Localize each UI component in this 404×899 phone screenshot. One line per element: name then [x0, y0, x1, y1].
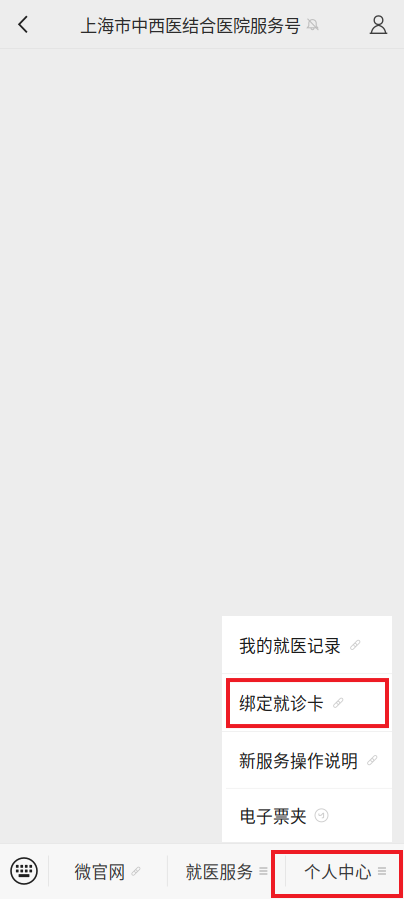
- button[interactable]: Back: [0, 0, 46, 48]
- button[interactable]: Profile: [353, 0, 404, 48]
- button[interactable]: 就医服务: [168, 844, 285, 898]
- button[interactable]: 新服务操作说明: [222, 732, 392, 788]
- staticText: 上海市中西医结合医院服务号: [80, 12, 301, 37]
- staticText: 个人中心: [304, 859, 372, 883]
- staticText: 微官网: [74, 859, 125, 883]
- button[interactable]: 电子票夹: [222, 789, 392, 842]
- staticText: 电子票夹: [239, 803, 307, 827]
- button[interactable]: 绑定就诊卡: [222, 674, 392, 731]
- button[interactable]: 微官网: [49, 844, 167, 898]
- button[interactable]: Keyboard: [0, 844, 48, 898]
- button[interactable]: 我的就医记录: [222, 616, 392, 673]
- button[interactable]: 个人中心: [285, 844, 404, 898]
- staticText: 就医服务: [185, 859, 253, 883]
- staticText: 绑定就诊卡: [239, 690, 324, 715]
- staticText: 新服务操作说明: [239, 748, 358, 772]
- staticText: 我的就医记录: [239, 633, 341, 657]
